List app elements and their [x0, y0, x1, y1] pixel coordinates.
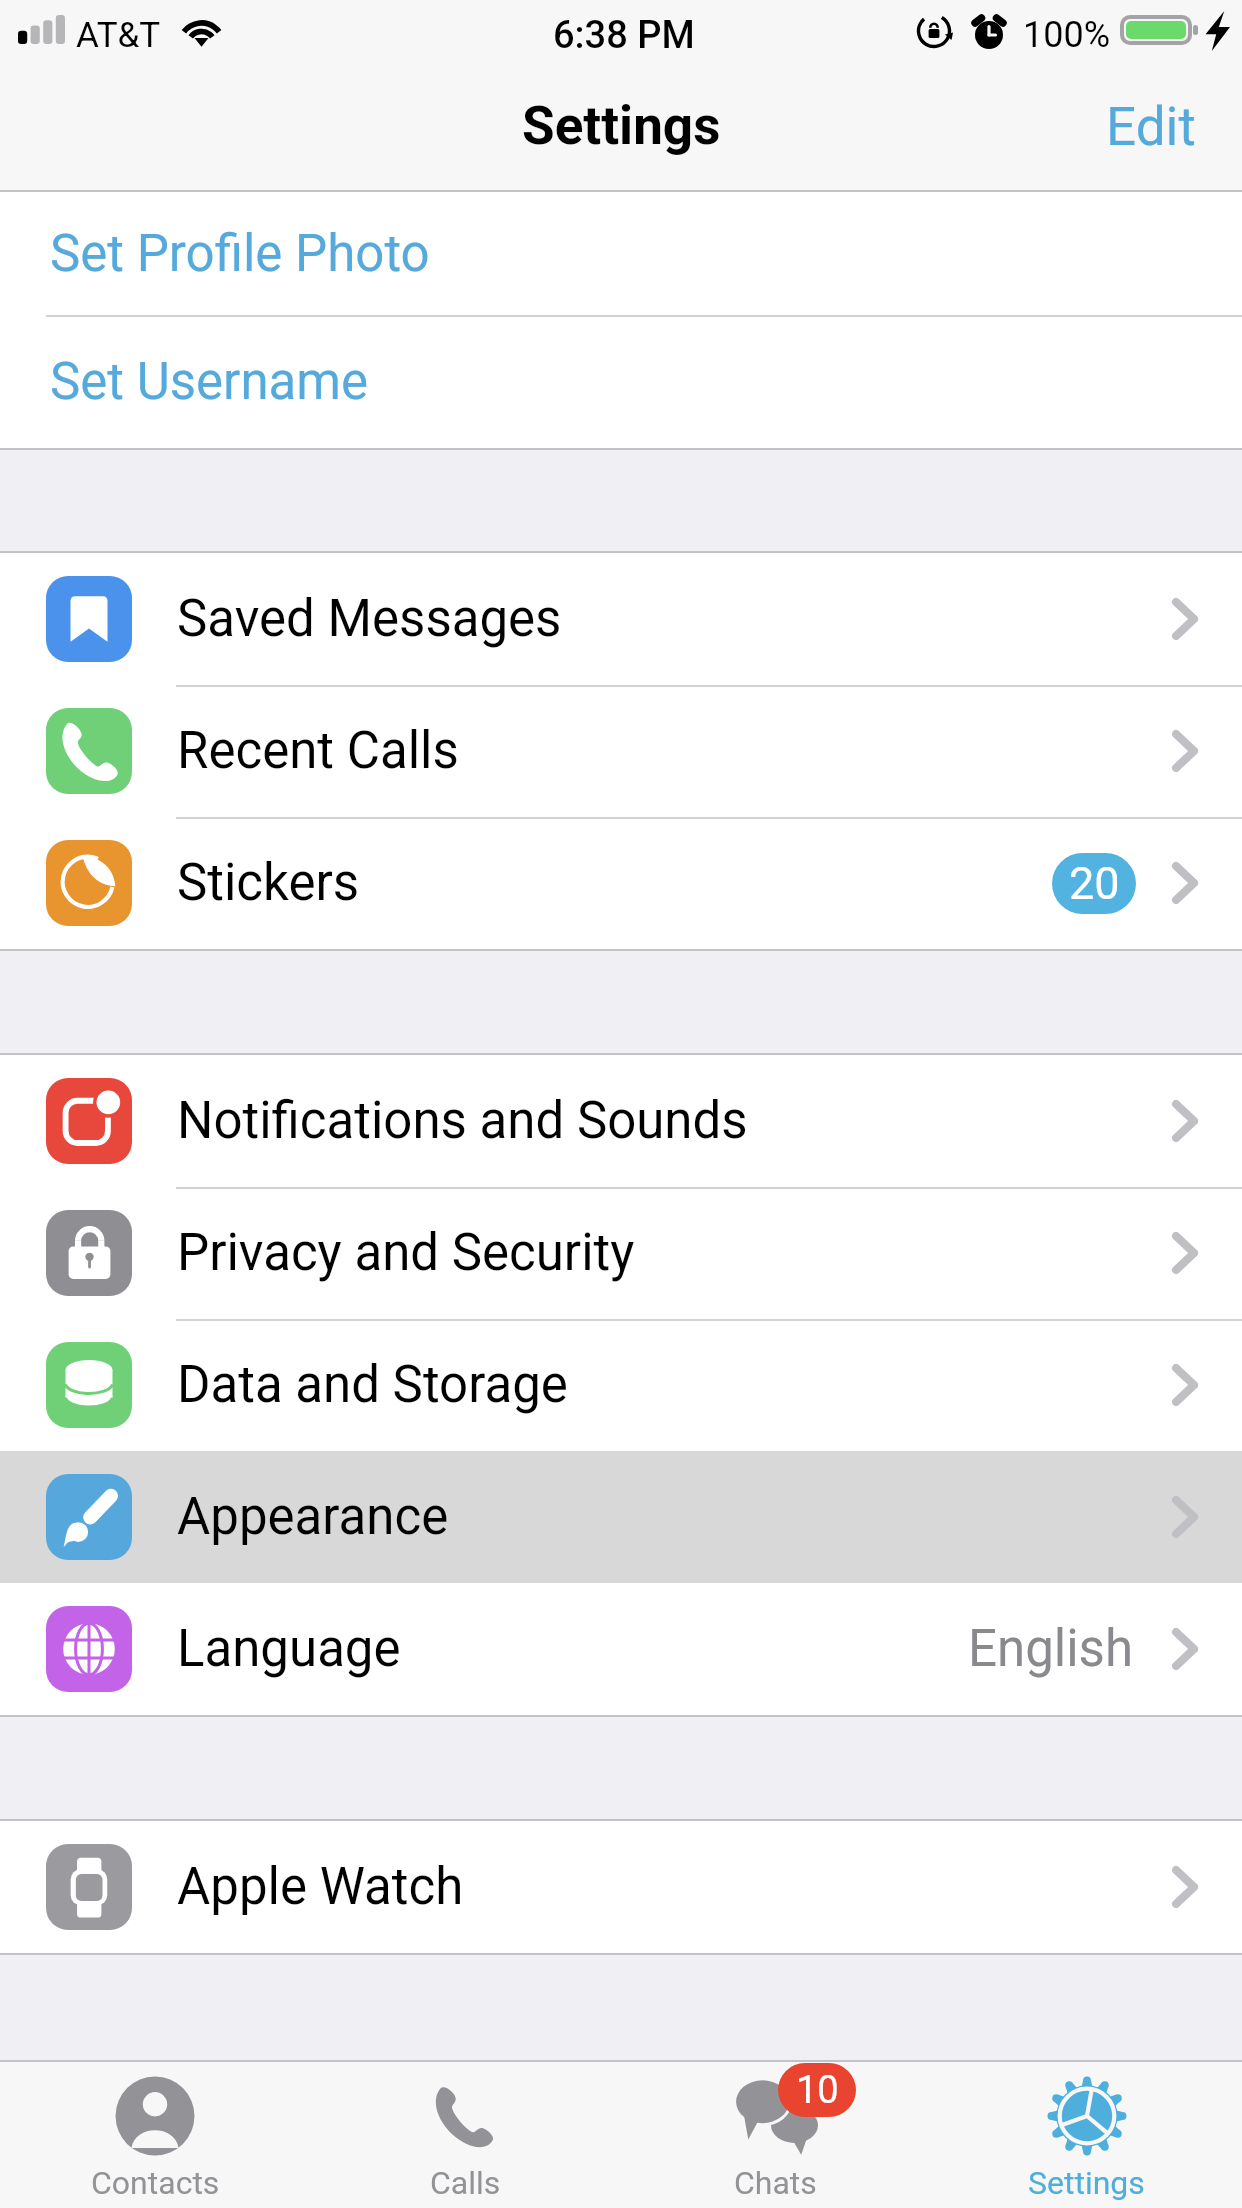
staticText: AT&T — [76, 15, 161, 56]
button[interactable]: Privacy and Security — [0, 1187, 1242, 1319]
button[interactable]: Notifications and Sounds — [0, 1055, 1242, 1187]
button[interactable]: Saved Messages — [0, 553, 1242, 685]
staticText: 20 — [1069, 857, 1120, 910]
button[interactable]: 10 — [620, 2060, 931, 2208]
button[interactable]: Recent Calls — [0, 685, 1242, 817]
staticText: Chats — [734, 2164, 817, 2202]
staticText: 6:38 PM — [553, 13, 695, 58]
staticText: Contacts — [91, 2164, 220, 2202]
staticText: Apple Watch — [177, 1857, 464, 1917]
staticText: Edit — [1106, 96, 1196, 158]
staticText: Stickers — [177, 853, 360, 913]
staticText: Recent Calls — [177, 721, 459, 781]
staticText: Saved Messages — [177, 589, 562, 649]
staticText: Calls — [430, 2164, 501, 2202]
staticText: Language — [177, 1619, 401, 1679]
staticText: Settings — [522, 95, 721, 157]
staticText: Appearance — [177, 1487, 449, 1547]
button[interactable]: Edit — [1106, 96, 1196, 158]
staticText: Set Profile Photo — [50, 224, 430, 284]
staticText: Privacy and Security — [177, 1223, 635, 1283]
staticText: Notifications and Sounds — [177, 1091, 748, 1151]
button[interactable]: Stickers — [0, 817, 1242, 949]
button[interactable]: Contacts — [0, 2060, 310, 2208]
staticText: 10 — [796, 2068, 839, 2113]
button[interactable]: Calls — [310, 2060, 620, 2208]
button[interactable]: Language — [0, 1583, 1242, 1715]
button[interactable]: Appearance — [0, 1451, 1242, 1583]
staticText: Set Username — [50, 352, 369, 412]
staticText: English — [968, 1619, 1134, 1679]
button[interactable]: Set Profile Photo — [0, 192, 1242, 315]
button[interactable]: Apple Watch — [0, 1821, 1242, 1953]
button[interactable]: Set Username — [0, 315, 1242, 448]
staticText: Settings — [1028, 2164, 1145, 2202]
staticText: 100% — [1023, 14, 1111, 56]
button[interactable]: Settings — [931, 2060, 1242, 2208]
staticText: Data and Storage — [177, 1355, 568, 1415]
button[interactable]: Data and Storage — [0, 1319, 1242, 1451]
